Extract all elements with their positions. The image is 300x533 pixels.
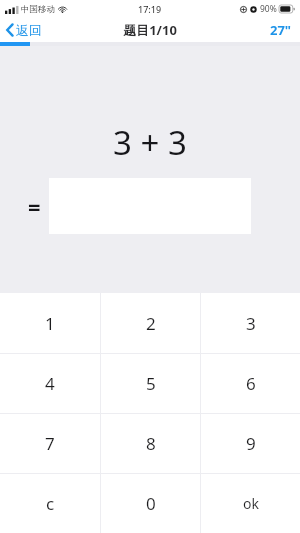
staticText: 2 [146,312,156,335]
staticText: 4 [45,372,55,395]
button[interactable]: 返回 [0,18,50,42]
button[interactable]: 27" [262,18,300,42]
button[interactable]: 3 [201,293,300,353]
button[interactable]: 2 [101,293,200,353]
staticText: 90% [260,3,277,15]
button[interactable]: ok [201,474,300,533]
staticText: 7 [45,432,55,455]
staticText: 1 [45,312,55,335]
button[interactable]: 5 [101,354,200,413]
button[interactable]: c [0,474,100,533]
staticText: = [28,191,41,221]
staticText: 返回 [16,22,42,38]
button[interactable]: 6 [201,354,300,413]
staticText: c [46,492,55,515]
staticText: 6 [246,372,256,395]
button[interactable]: 8 [101,414,200,473]
staticText: 8 [146,432,156,455]
staticText: 9 [246,432,256,455]
button[interactable]: 9 [201,414,300,473]
button[interactable]: 7 [0,414,100,473]
staticText: 题目1/10 [123,21,177,39]
staticText: ok [243,494,259,513]
button[interactable]: 4 [0,354,100,413]
staticText: 27" [270,21,292,39]
staticText: 3 [246,312,256,335]
staticText: 0 [146,492,156,515]
button[interactable]: 0 [101,474,200,533]
staticText: 17:19 [138,3,162,15]
button[interactable]: 1 [0,293,100,353]
staticText: 中国移动 [21,4,55,15]
staticText: 5 [146,372,156,395]
staticText: 3 + 3 [113,120,187,165]
